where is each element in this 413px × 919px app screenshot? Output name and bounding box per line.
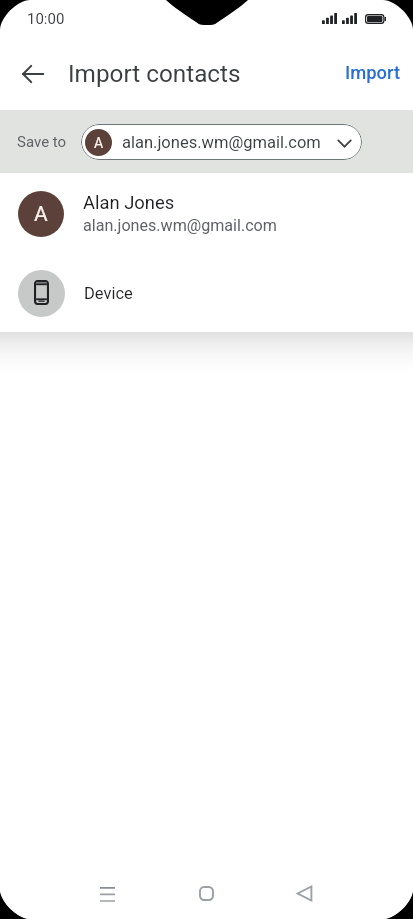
button[interactable]: Device — [0, 254, 413, 332]
staticText: A — [34, 202, 48, 227]
staticText: alan.jones.wm@gmail.com — [122, 133, 337, 152]
button[interactable]: Back — [9, 50, 57, 98]
staticText: alan.jones.wm@gmail.com — [83, 216, 277, 235]
staticText: Import — [345, 62, 401, 84]
button[interactable]: Home — [180, 867, 233, 919]
staticText: Import contacts — [68, 59, 241, 87]
staticText: A — [94, 135, 104, 151]
button[interactable]: A — [81, 124, 362, 160]
button[interactable]: Back — [278, 867, 331, 919]
button[interactable]: Recent apps — [81, 867, 134, 919]
staticText: 10:00 — [27, 10, 65, 28]
button[interactable]: Import — [335, 53, 411, 93]
staticText: Alan Jones — [83, 192, 175, 214]
staticText: Device — [84, 284, 133, 303]
staticText: Save to — [17, 133, 67, 151]
button[interactable]: A — [0, 173, 413, 254]
